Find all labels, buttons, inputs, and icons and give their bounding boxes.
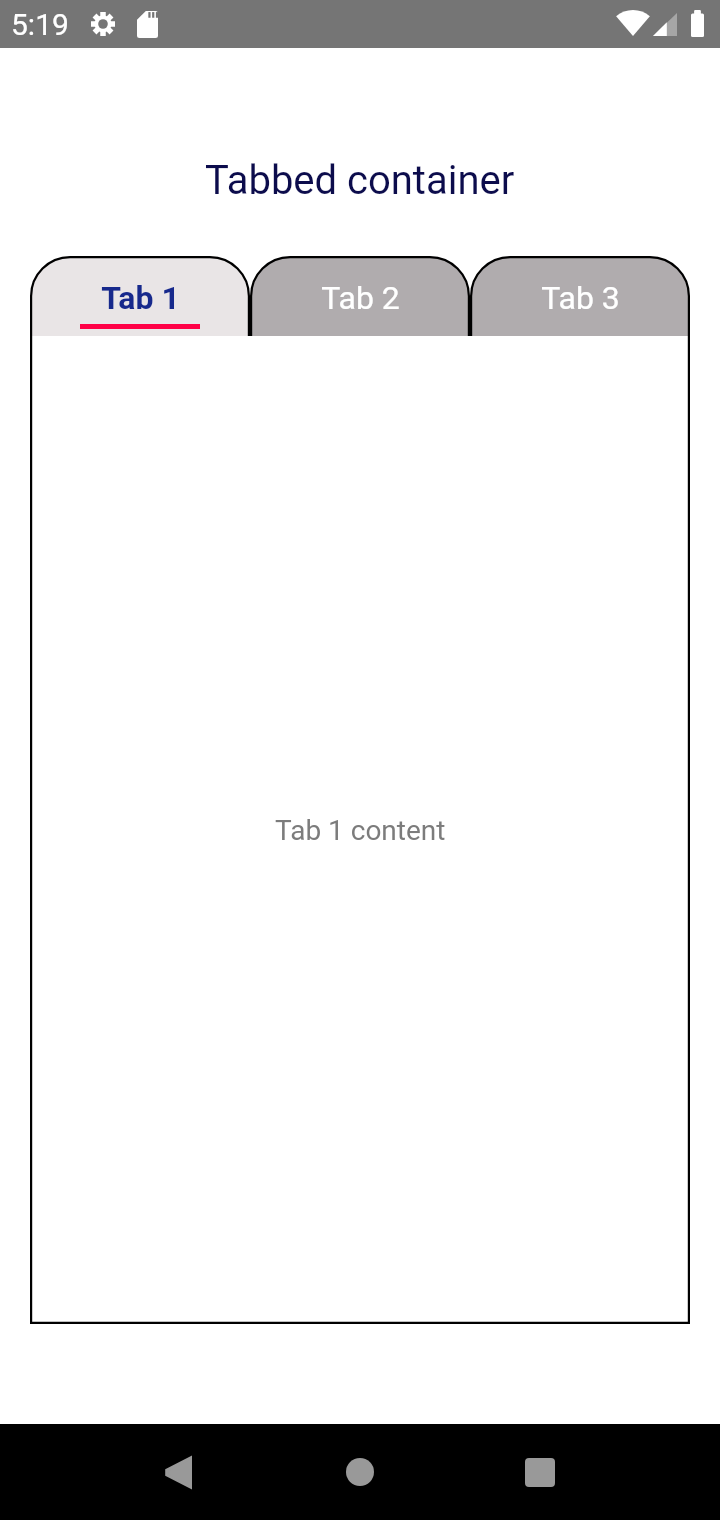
button[interactable]: Recent apps xyxy=(480,1424,600,1520)
button[interactable]: Home xyxy=(300,1424,420,1520)
staticText: 5:19 xyxy=(11,7,69,42)
button[interactable]: Tab 1 xyxy=(30,256,250,336)
button[interactable]: Tab 2 xyxy=(250,256,470,336)
button[interactable]: Back xyxy=(118,1424,238,1520)
staticText: Tab 1 content xyxy=(275,814,446,847)
staticText: Tab 2 xyxy=(321,279,400,317)
staticText: Tab 1 xyxy=(101,279,180,317)
staticText: Tabbed container xyxy=(205,157,515,204)
staticText: Tab 3 xyxy=(541,279,620,317)
button[interactable]: Tab 3 xyxy=(470,256,690,336)
